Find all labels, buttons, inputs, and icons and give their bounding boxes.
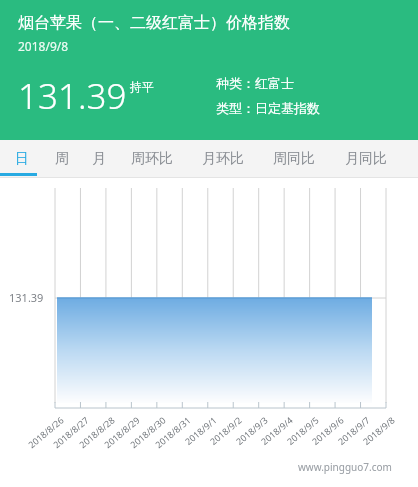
other: Website watermark — [298, 460, 392, 474]
staticText: 种类：红富士 — [216, 75, 294, 91]
staticText: 月同比 — [345, 150, 387, 168]
button[interactable]: 月环比 — [194, 140, 252, 178]
staticText: 周 — [55, 150, 69, 168]
staticText: 131.39 — [18, 72, 127, 120]
staticText: 2018/8/27 — [50, 413, 91, 450]
staticText: 2018/9/8 — [18, 38, 69, 54]
staticText: 2018/9/4 — [258, 413, 295, 447]
staticText: 2018/8/28 — [76, 413, 117, 450]
staticText: 2018/9/7 — [335, 413, 372, 447]
button[interactable]: 月同比 — [337, 140, 395, 178]
button[interactable]: 日 — [2, 140, 42, 178]
staticText: 2018/8/26 — [25, 413, 66, 450]
staticText: www.pingguo7.com — [298, 460, 392, 474]
staticText: 2018/9/3 — [233, 413, 270, 447]
staticText: 2018/8/31 — [152, 413, 193, 450]
staticText: 月环比 — [202, 150, 244, 168]
staticText: 2018/9/2 — [207, 413, 244, 447]
button[interactable]: 周 — [43, 140, 81, 178]
staticText: 日 — [15, 150, 29, 168]
staticText: 月 — [92, 150, 106, 168]
button[interactable]: 周环比 — [123, 140, 181, 178]
staticText: 类型：日定基指数 — [216, 100, 320, 116]
button[interactable]: 月 — [80, 140, 118, 178]
staticText: 周环比 — [131, 150, 173, 168]
staticText: 2018/9/8 — [360, 413, 397, 447]
button[interactable]: 周同比 — [265, 140, 323, 178]
staticText: 烟台苹果（一、二级红富士）价格指数 — [18, 13, 290, 33]
staticText: 2018/8/30 — [127, 413, 168, 450]
staticText: 周同比 — [273, 150, 315, 168]
staticText: 2018/9/1 — [182, 413, 219, 447]
staticText: 2018/9/5 — [284, 413, 321, 447]
staticText: 2018/9/6 — [309, 413, 346, 447]
staticText: 2018/8/29 — [101, 413, 142, 450]
staticText: 131.39 — [9, 290, 44, 305]
staticText: 持平 — [130, 79, 154, 94]
